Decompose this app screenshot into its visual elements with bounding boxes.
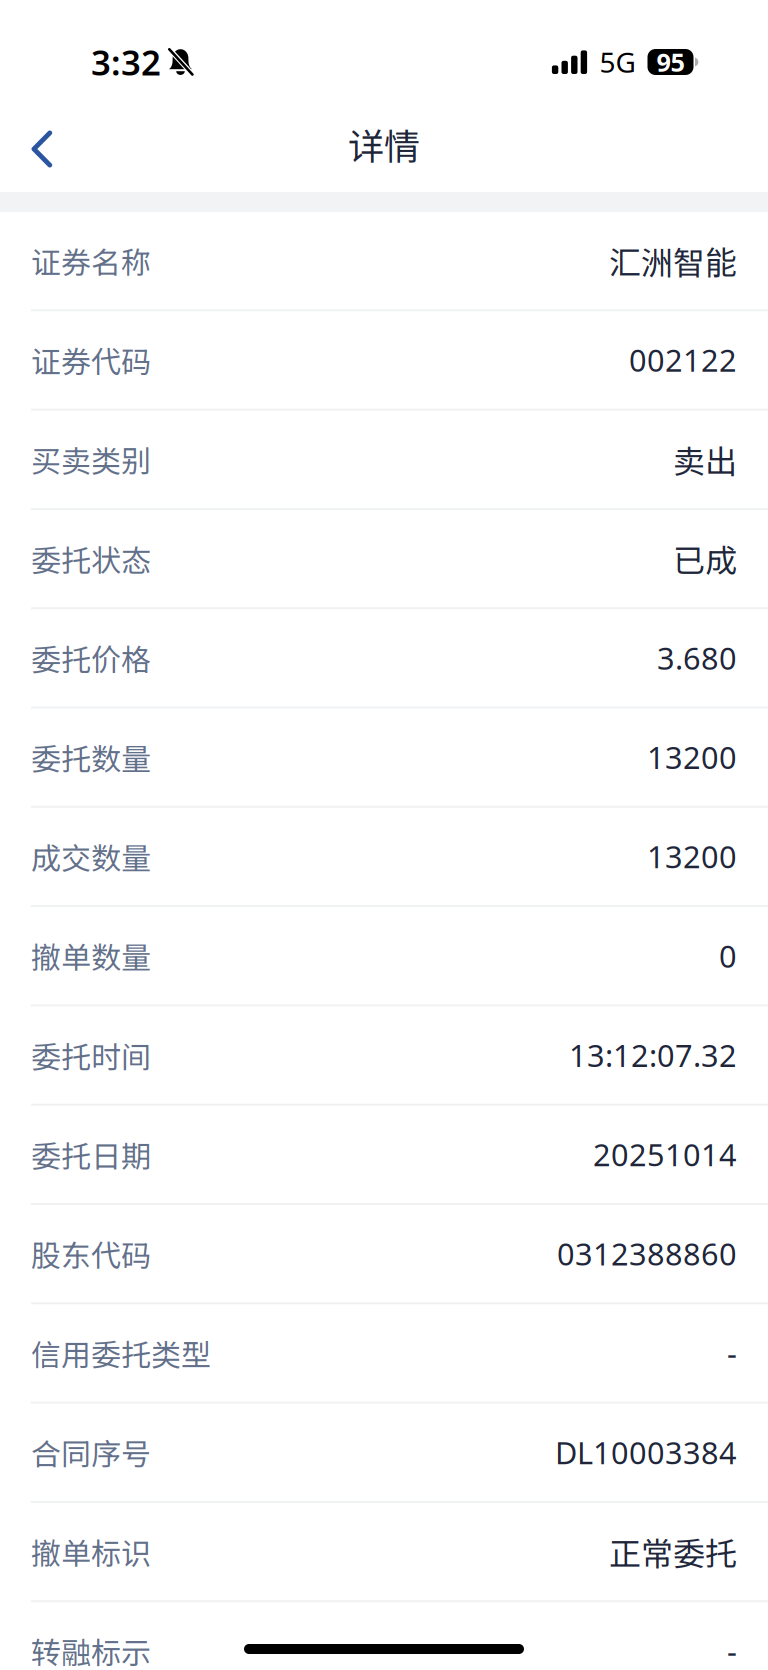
staticText: 成交数量: [31, 835, 151, 878]
staticText: -: [727, 1630, 737, 1670]
staticText: 正常委托: [609, 1528, 737, 1575]
staticText: 卖出: [673, 436, 737, 482]
staticText: 证券名称: [31, 239, 151, 282]
staticText: 买卖类别: [31, 437, 151, 481]
staticText: 95: [656, 45, 684, 79]
staticText: 详情: [348, 118, 420, 170]
staticText: 证券代码: [31, 338, 151, 382]
staticText: -: [727, 1333, 737, 1373]
staticText: 信用委托类型: [31, 1331, 211, 1375]
staticText: 委托数量: [31, 735, 151, 779]
staticText: 3.680: [657, 637, 737, 678]
staticText: 13:12:07.32: [569, 1035, 737, 1075]
staticText: 合同序号: [31, 1430, 151, 1474]
staticText: 13200: [647, 836, 737, 877]
staticText: 13200: [647, 737, 737, 777]
staticText: DL10003384: [555, 1432, 737, 1473]
staticText: 3:32: [91, 39, 161, 85]
staticText: 5G: [599, 43, 635, 81]
staticText: 002122: [629, 340, 737, 380]
staticText: 转融标示: [31, 1629, 151, 1670]
staticText: 20251014: [593, 1134, 737, 1175]
staticText: 撤单数量: [31, 934, 151, 977]
staticText: 0312388860: [557, 1233, 737, 1274]
staticText: 委托日期: [31, 1133, 151, 1176]
staticText: 0: [719, 935, 737, 976]
staticText: 汇洲智能: [609, 237, 737, 284]
staticText: 已成: [673, 535, 737, 582]
staticText: 撤单标识: [31, 1530, 151, 1573]
staticText: 委托价格: [31, 636, 151, 679]
staticText: 委托状态: [31, 537, 151, 580]
button[interactable]: 返回: [0, 99, 73, 189]
staticText: 股东代码: [31, 1232, 151, 1275]
staticText: 委托时间: [31, 1033, 151, 1077]
